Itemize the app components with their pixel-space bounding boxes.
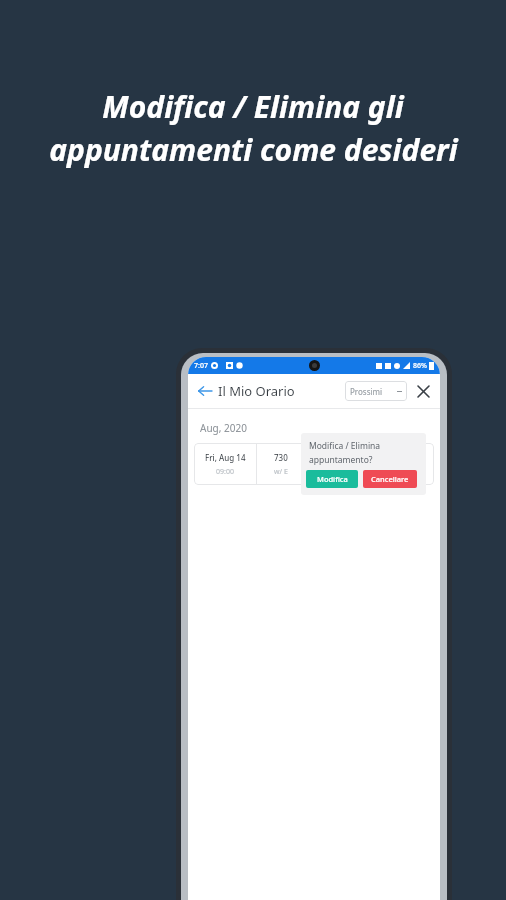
staticText: Modifica / Elimina gli [102, 86, 404, 127]
button[interactable]: Edit [414, 457, 428, 471]
button[interactable]: Back [196, 382, 214, 400]
staticText: 86% [413, 361, 427, 371]
staticText: Prossimi [350, 386, 383, 397]
button[interactable]: Fri, Aug 14 [194, 443, 434, 485]
staticText: appuntamento? [309, 454, 373, 466]
button[interactable]: Prossimi [345, 381, 407, 401]
staticText: Il Mio Orario [218, 382, 295, 400]
staticText: 7:07 [194, 361, 208, 371]
button[interactable]: Modifica [306, 470, 358, 488]
staticText: w/ E [274, 467, 288, 477]
staticText: appuntamenti come desideri [49, 129, 458, 170]
button[interactable]: Close [414, 382, 432, 400]
staticText: Modifica / Elimina [309, 440, 381, 452]
staticText: Fri, Aug 14 [205, 452, 246, 463]
staticText: 730 [274, 452, 288, 463]
staticText: 09:00 [216, 467, 234, 477]
staticText: Aug, 2020 [200, 421, 247, 435]
staticText: Modifica [317, 474, 348, 484]
button[interactable]: Cancellare [363, 470, 417, 488]
staticText: Cancellare [371, 474, 409, 484]
